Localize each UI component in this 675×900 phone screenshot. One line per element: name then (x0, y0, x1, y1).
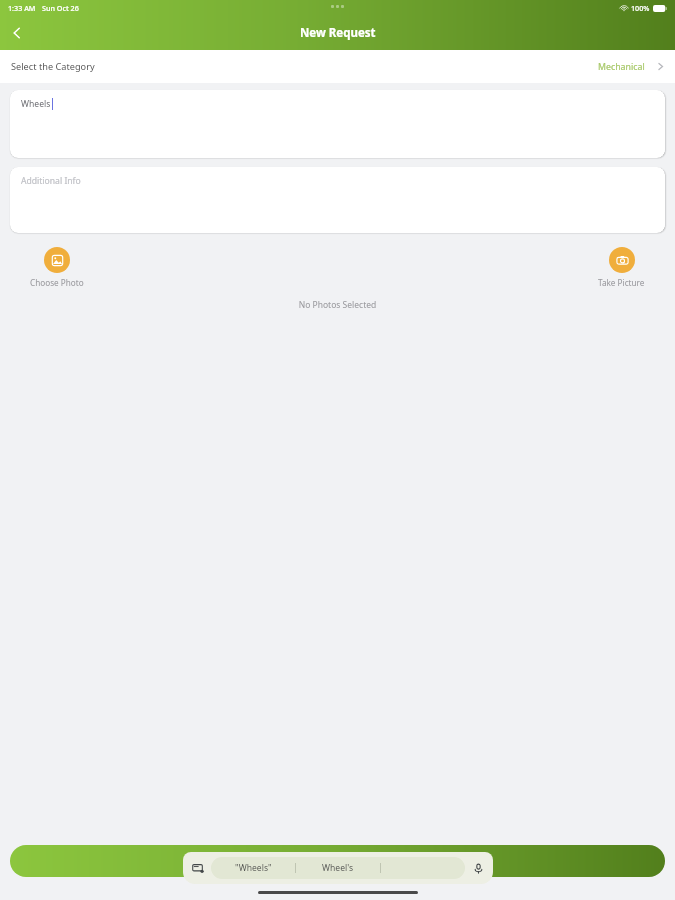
staticText: 100% (631, 3, 650, 13)
staticText: New Request (300, 25, 376, 41)
button[interactable]: Choose Photo (28, 246, 86, 289)
staticText: Take Picture (598, 277, 645, 288)
staticText: No Photos Selected (0, 299, 675, 311)
button[interactable]: "Wheels" (211, 857, 295, 879)
button[interactable]: Submit request (10, 845, 665, 877)
staticText: 1:33 AM (8, 3, 36, 13)
staticText: Select the Category (11, 60, 95, 73)
button[interactable]: Additional Info (10, 167, 665, 233)
staticText: Additional Info (21, 175, 81, 187)
button[interactable]: Take Picture (596, 246, 647, 289)
staticText: Sun Oct 26 (42, 3, 79, 13)
button[interactable]: Wheel's (296, 857, 380, 879)
staticText: Wheel's (322, 862, 354, 874)
button[interactable]: Voice input (470, 860, 486, 876)
staticText: "Wheels" (235, 862, 272, 874)
button[interactable]: Select the Category (0, 50, 675, 83)
staticText: Wheels (21, 98, 51, 110)
staticText: Choose Photo (30, 277, 84, 288)
staticText: Mechanical (598, 61, 645, 73)
button[interactable]: Clipboard (190, 860, 206, 876)
button[interactable]: Back (0, 16, 34, 50)
button[interactable]: Wheels (10, 90, 665, 158)
